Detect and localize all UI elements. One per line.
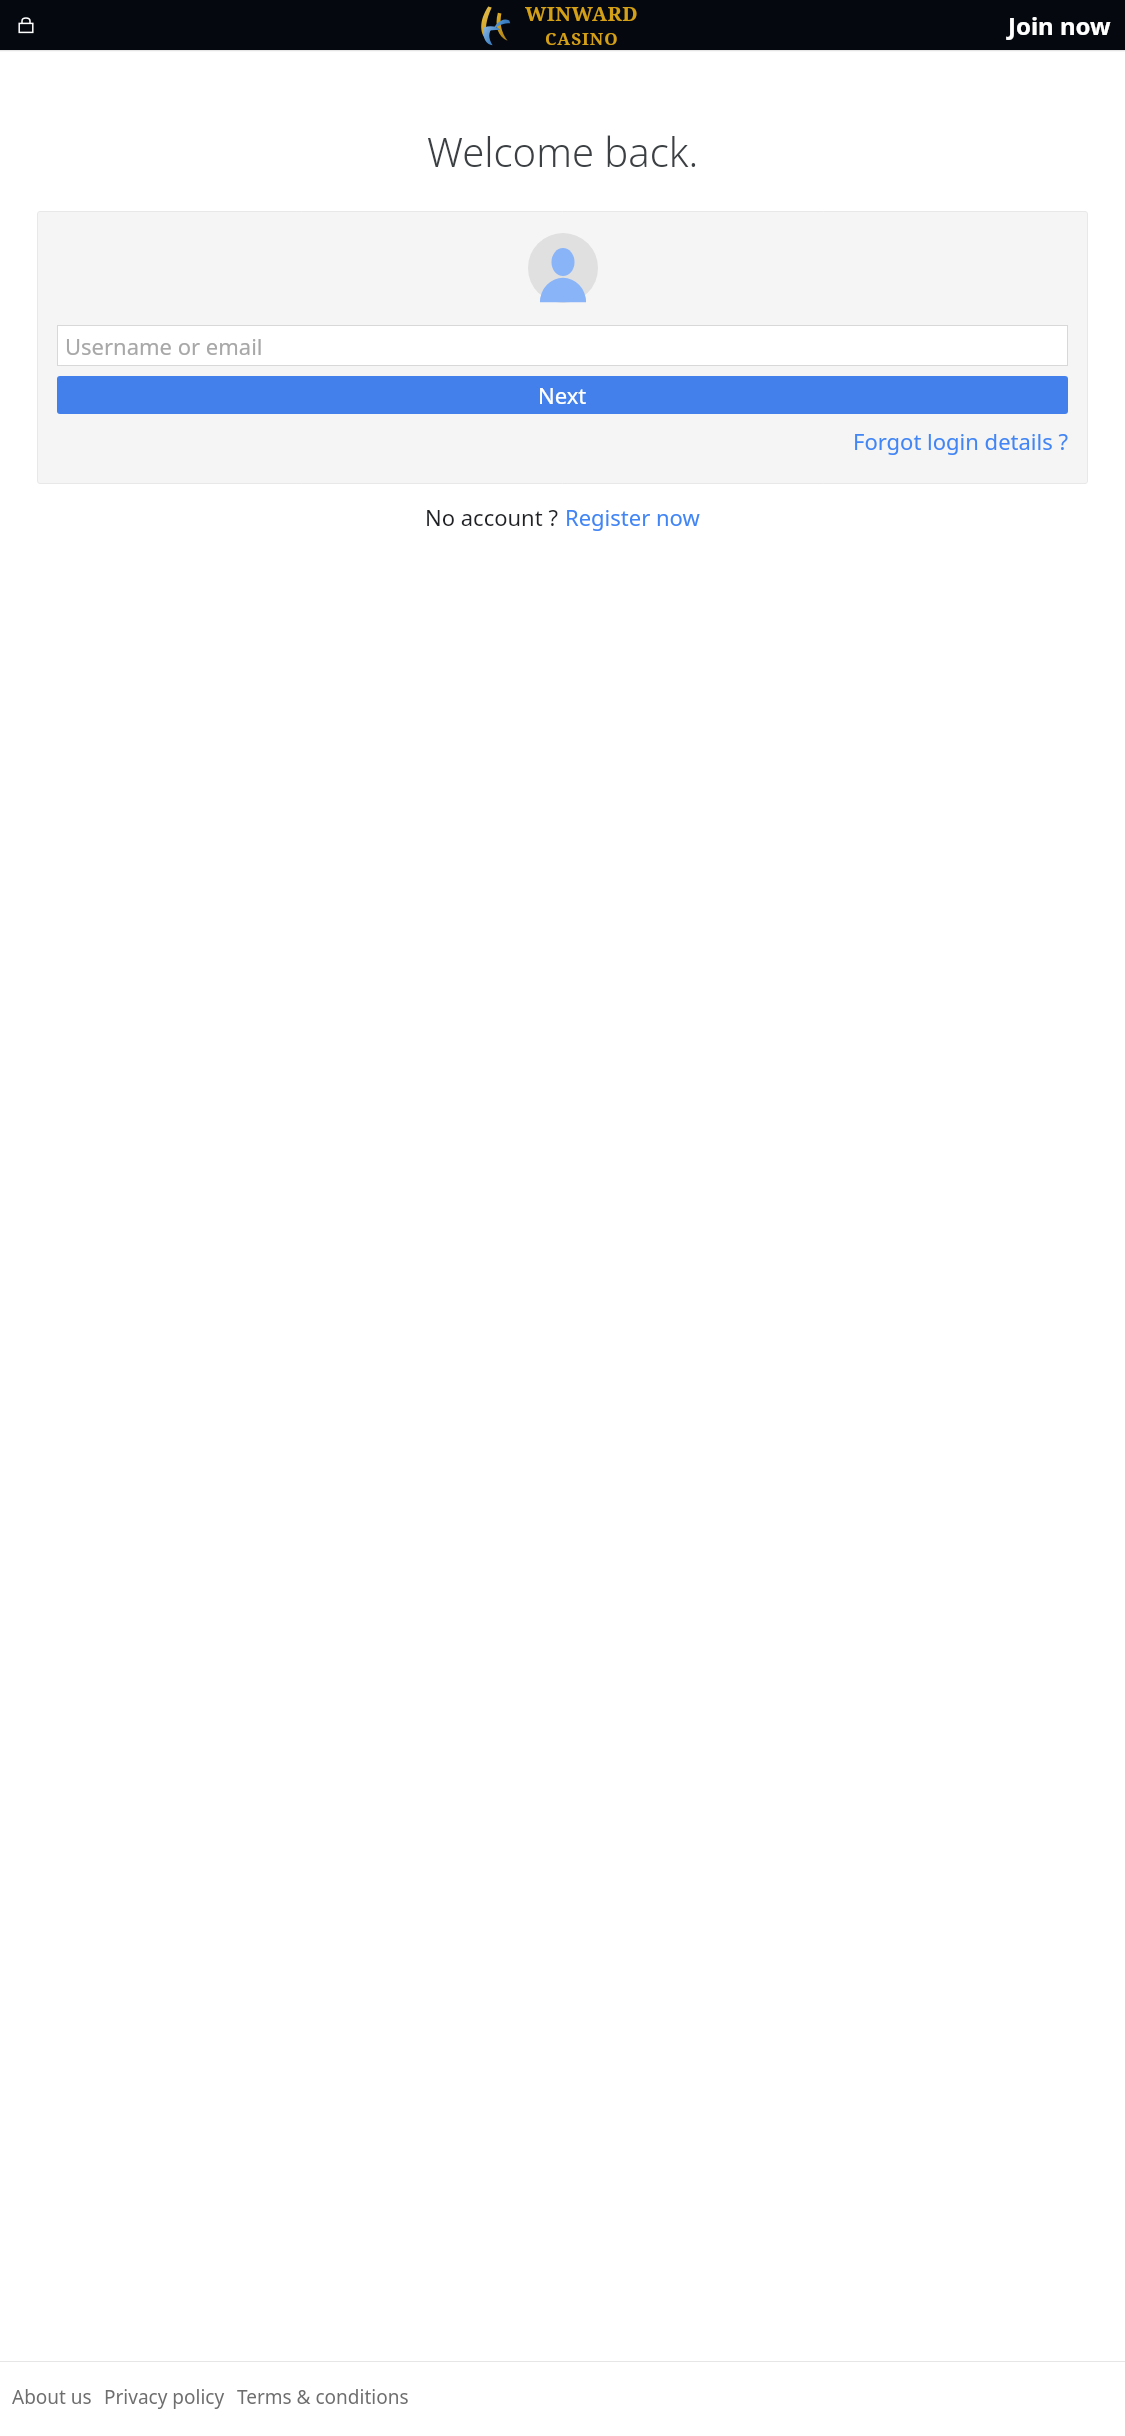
staticText: Register now xyxy=(565,502,700,532)
button[interactable]: Secure login xyxy=(4,3,48,47)
staticText: Forgot login details ? xyxy=(853,426,1068,456)
staticText: CASINO xyxy=(545,27,619,50)
staticText: No account ? xyxy=(425,502,558,532)
staticText: WINWARD xyxy=(525,0,639,27)
staticText: Welcome back. xyxy=(427,124,699,178)
staticText: About us xyxy=(12,2384,92,2410)
button[interactable]: About us xyxy=(12,2384,92,2410)
staticText: Join now xyxy=(1008,9,1111,42)
button[interactable]: Privacy policy xyxy=(104,2384,225,2410)
staticText: Next xyxy=(538,380,587,410)
button[interactable]: Forgot login details ? xyxy=(853,420,1068,462)
button[interactable]: Join now xyxy=(994,1,1125,50)
button[interactable]: Username or email xyxy=(57,325,1068,366)
staticText: Username or email xyxy=(65,331,263,361)
staticText: Terms & conditions xyxy=(237,2384,409,2410)
button[interactable]: Register now xyxy=(565,502,700,532)
button[interactable]: Terms & conditions xyxy=(237,2384,409,2410)
button[interactable]: Next xyxy=(57,376,1068,414)
staticText: Privacy policy xyxy=(104,2384,225,2410)
